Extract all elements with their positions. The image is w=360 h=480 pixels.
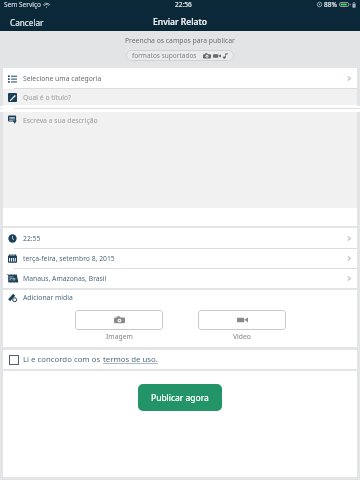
button[interactable]: Escreva a sua descrição bbox=[3, 112, 357, 208]
staticText: Manaus, Amazonas, Brasil bbox=[23, 274, 107, 283]
button[interactable]: Video bbox=[198, 310, 286, 330]
staticText: Enviar Relato bbox=[153, 16, 207, 28]
staticText: Imagem bbox=[106, 332, 133, 341]
button[interactable]: Imagem bbox=[75, 310, 163, 330]
staticText: termos de uso. bbox=[103, 354, 158, 365]
staticText: Video bbox=[233, 332, 251, 341]
staticText: Escreva a sua descrição bbox=[23, 116, 98, 125]
staticText: terça-feira, setembro 8, 2015 bbox=[23, 254, 115, 263]
staticText: Selecione uma categoria bbox=[23, 74, 102, 83]
button[interactable]: Manaus, Amazonas, Brasil bbox=[3, 269, 357, 288]
staticText: Publicar agora bbox=[151, 392, 209, 404]
button[interactable]: Publicar agora bbox=[138, 384, 222, 411]
staticText: Preencha os campos para publicar bbox=[125, 36, 235, 45]
staticText: 22:55 bbox=[23, 234, 41, 243]
button[interactable]: Selecione uma categoria bbox=[3, 68, 357, 88]
staticText: Cancelar bbox=[10, 17, 44, 28]
staticText: formatos suportados bbox=[132, 51, 197, 60]
button[interactable]: 22:55 bbox=[3, 228, 357, 248]
button[interactable]: Qual é o título? bbox=[3, 89, 357, 105]
staticText: 88% bbox=[324, 0, 337, 9]
button[interactable]: terça-feira, setembro 8, 2015 bbox=[3, 249, 357, 268]
staticText: Sem Serviço bbox=[4, 0, 41, 9]
staticText: Li e concordo com os bbox=[23, 354, 103, 365]
staticText: 22:56 bbox=[175, 0, 192, 9]
button[interactable]: Li e concordo com os bbox=[3, 350, 357, 369]
staticText: Qual é o título? bbox=[23, 93, 71, 102]
button[interactable]: Cancelar bbox=[0, 14, 54, 31]
staticText: Adicionar mídia bbox=[23, 293, 73, 302]
